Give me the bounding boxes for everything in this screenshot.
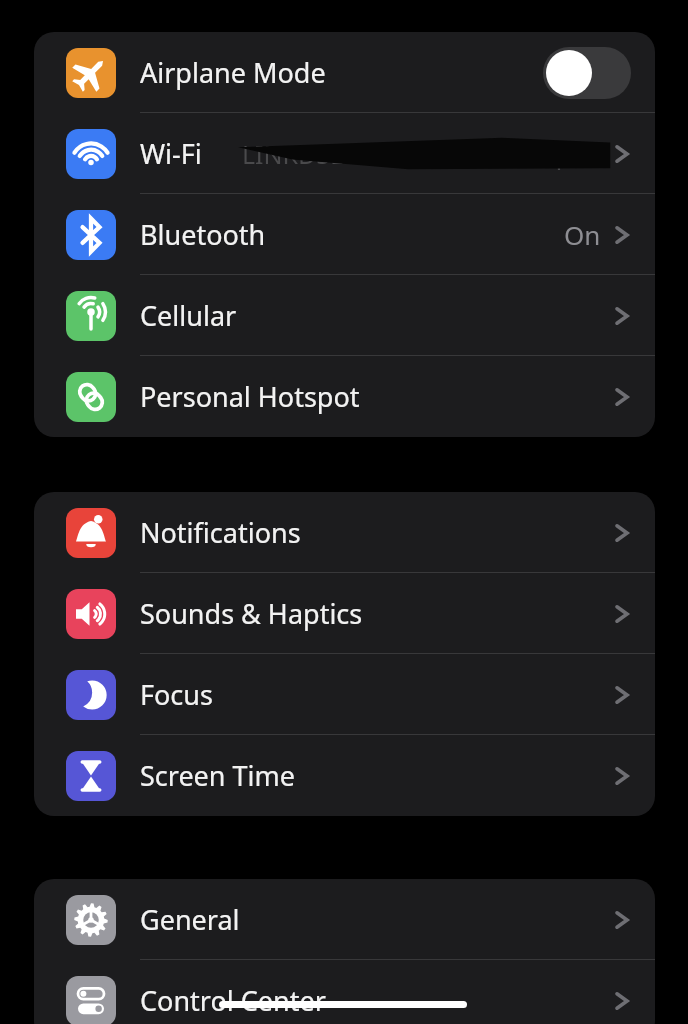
button[interactable]: Control Center xyxy=(34,960,655,1024)
button[interactable]: Sounds & Haptics xyxy=(34,573,655,654)
button[interactable]: Bluetooth xyxy=(34,194,655,275)
button[interactable]: Focus xyxy=(34,654,655,735)
button[interactable]: Airplane Mode xyxy=(34,32,655,113)
button[interactable]: General xyxy=(34,879,655,960)
staticText: Bluetooth xyxy=(140,216,266,253)
staticText: Airplane Mode xyxy=(140,54,326,91)
staticText: LINKDSL-MohammedGhbspF… xyxy=(242,137,603,171)
button[interactable]: Wi-Fi xyxy=(34,113,655,194)
staticText: Notifications xyxy=(140,514,301,551)
staticText: General xyxy=(140,901,240,938)
staticText: Control Center xyxy=(140,982,326,1019)
staticText: Screen Time xyxy=(140,757,296,794)
staticText: Personal Hotspot xyxy=(140,378,360,415)
staticText: Sounds & Haptics xyxy=(140,595,363,632)
button[interactable]: Airplane Mode toggle, off xyxy=(543,47,631,99)
staticText: Wi-Fi xyxy=(140,135,202,172)
button[interactable]: Cellular xyxy=(34,275,655,356)
button[interactable]: Notifications xyxy=(34,492,655,573)
staticText: On xyxy=(564,217,601,252)
staticText: Cellular xyxy=(140,297,237,334)
staticText: Focus xyxy=(140,676,213,713)
button[interactable]: Screen Time xyxy=(34,735,655,816)
button[interactable]: Personal Hotspot xyxy=(34,356,655,437)
